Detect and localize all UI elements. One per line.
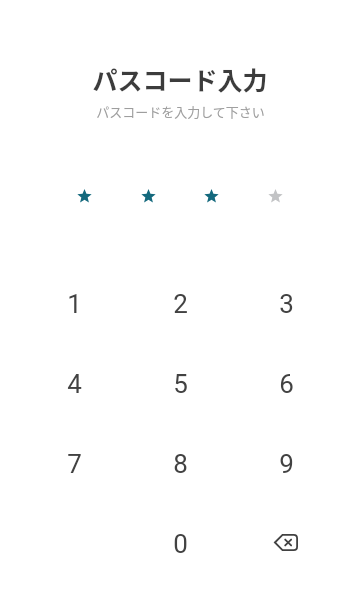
staticText: 7 [67,449,82,479]
staticText: 2 [173,289,188,319]
staticText: 9 [279,449,294,479]
staticText: 0 [173,529,188,559]
staticText: パスコードを入力して下さい [96,102,265,121]
button[interactable]: 0 [127,504,233,584]
button[interactable]: 1 [21,264,127,344]
staticText: 6 [279,369,294,399]
button[interactable]: 8 [127,424,233,504]
staticText: 8 [173,449,188,479]
button[interactable]: 5 [127,344,233,424]
button[interactable]: 6 [233,344,339,424]
button[interactable]: 2 [127,264,233,344]
staticText: 3 [279,289,294,319]
staticText: パスコード入力 [92,61,268,97]
staticText: 1 [67,289,82,319]
button[interactable]: 7 [21,424,127,504]
staticText: 4 [67,369,82,399]
button[interactable]: 9 [233,424,339,504]
button[interactable]: 4 [21,344,127,424]
button[interactable]: Backspace [233,504,339,584]
staticText: 5 [173,369,188,399]
button[interactable]: 3 [233,264,339,344]
